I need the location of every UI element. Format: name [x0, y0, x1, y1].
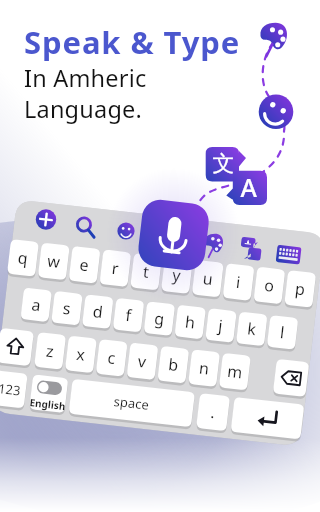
- button[interactable]: Speak and Type Amharic keyboard promo: [0, 0, 320, 512]
